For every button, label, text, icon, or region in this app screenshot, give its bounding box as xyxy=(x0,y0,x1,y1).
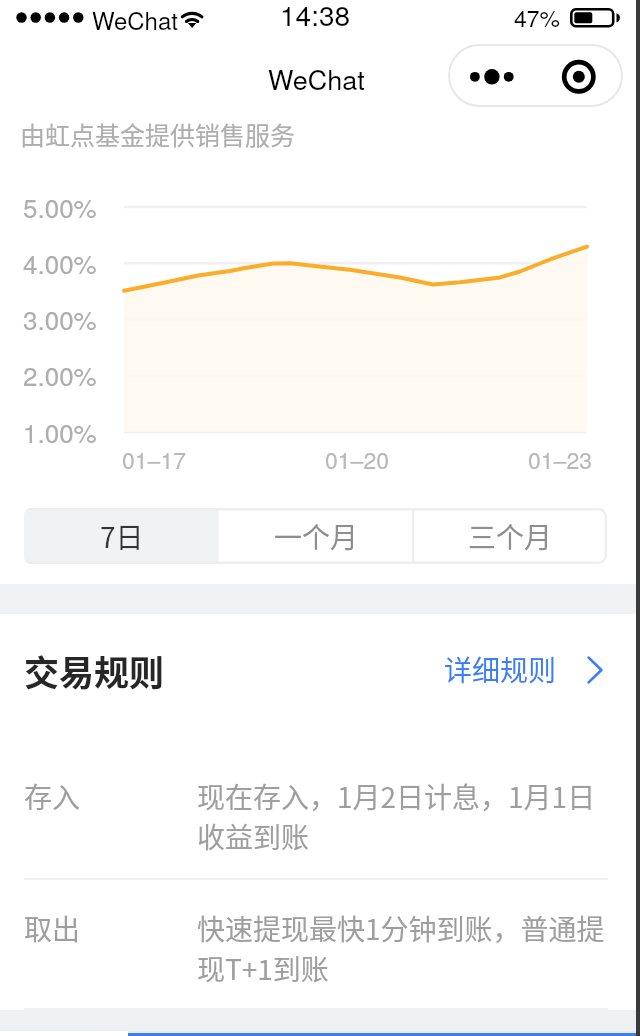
staticText: 3.00% xyxy=(23,300,97,337)
staticText: 5.00% xyxy=(23,188,97,225)
staticText: 01–17 xyxy=(109,443,199,476)
staticText: 快速提现最快1分钟到账，普通提 现T+1到账 xyxy=(197,908,605,988)
button[interactable]: 一个月 xyxy=(219,508,413,564)
button[interactable]: 详细规则 xyxy=(444,649,573,690)
staticText: 4.00% xyxy=(23,244,97,281)
staticText: 由虹点基金提供销售服务 xyxy=(20,116,296,152)
staticText: 7日 xyxy=(100,516,144,557)
staticText: 交易规则 xyxy=(24,645,165,696)
button[interactable]: More options and close mini program xyxy=(448,44,623,107)
staticText: 1.00% xyxy=(23,413,97,450)
staticText: 14:38 xyxy=(280,0,351,34)
staticText: 一个月 xyxy=(274,516,359,557)
button[interactable]: 三个月 xyxy=(413,508,607,564)
staticText: 47% xyxy=(514,1,561,34)
staticText: 01–20 xyxy=(312,443,402,476)
staticText: 01–23 xyxy=(515,443,605,476)
staticText: 存入 xyxy=(24,776,81,817)
staticText: 2.00% xyxy=(23,356,97,393)
button[interactable]: 7日 xyxy=(24,508,219,564)
staticText: 三个月 xyxy=(468,516,553,557)
staticText: 详细规则 xyxy=(444,649,557,690)
staticText: 取出 xyxy=(24,908,81,949)
staticText: WeChat xyxy=(92,2,178,36)
staticText: 现在存入，1月2日计息，1月1日 收益到账 xyxy=(197,776,596,856)
staticText: WeChat xyxy=(268,59,365,98)
